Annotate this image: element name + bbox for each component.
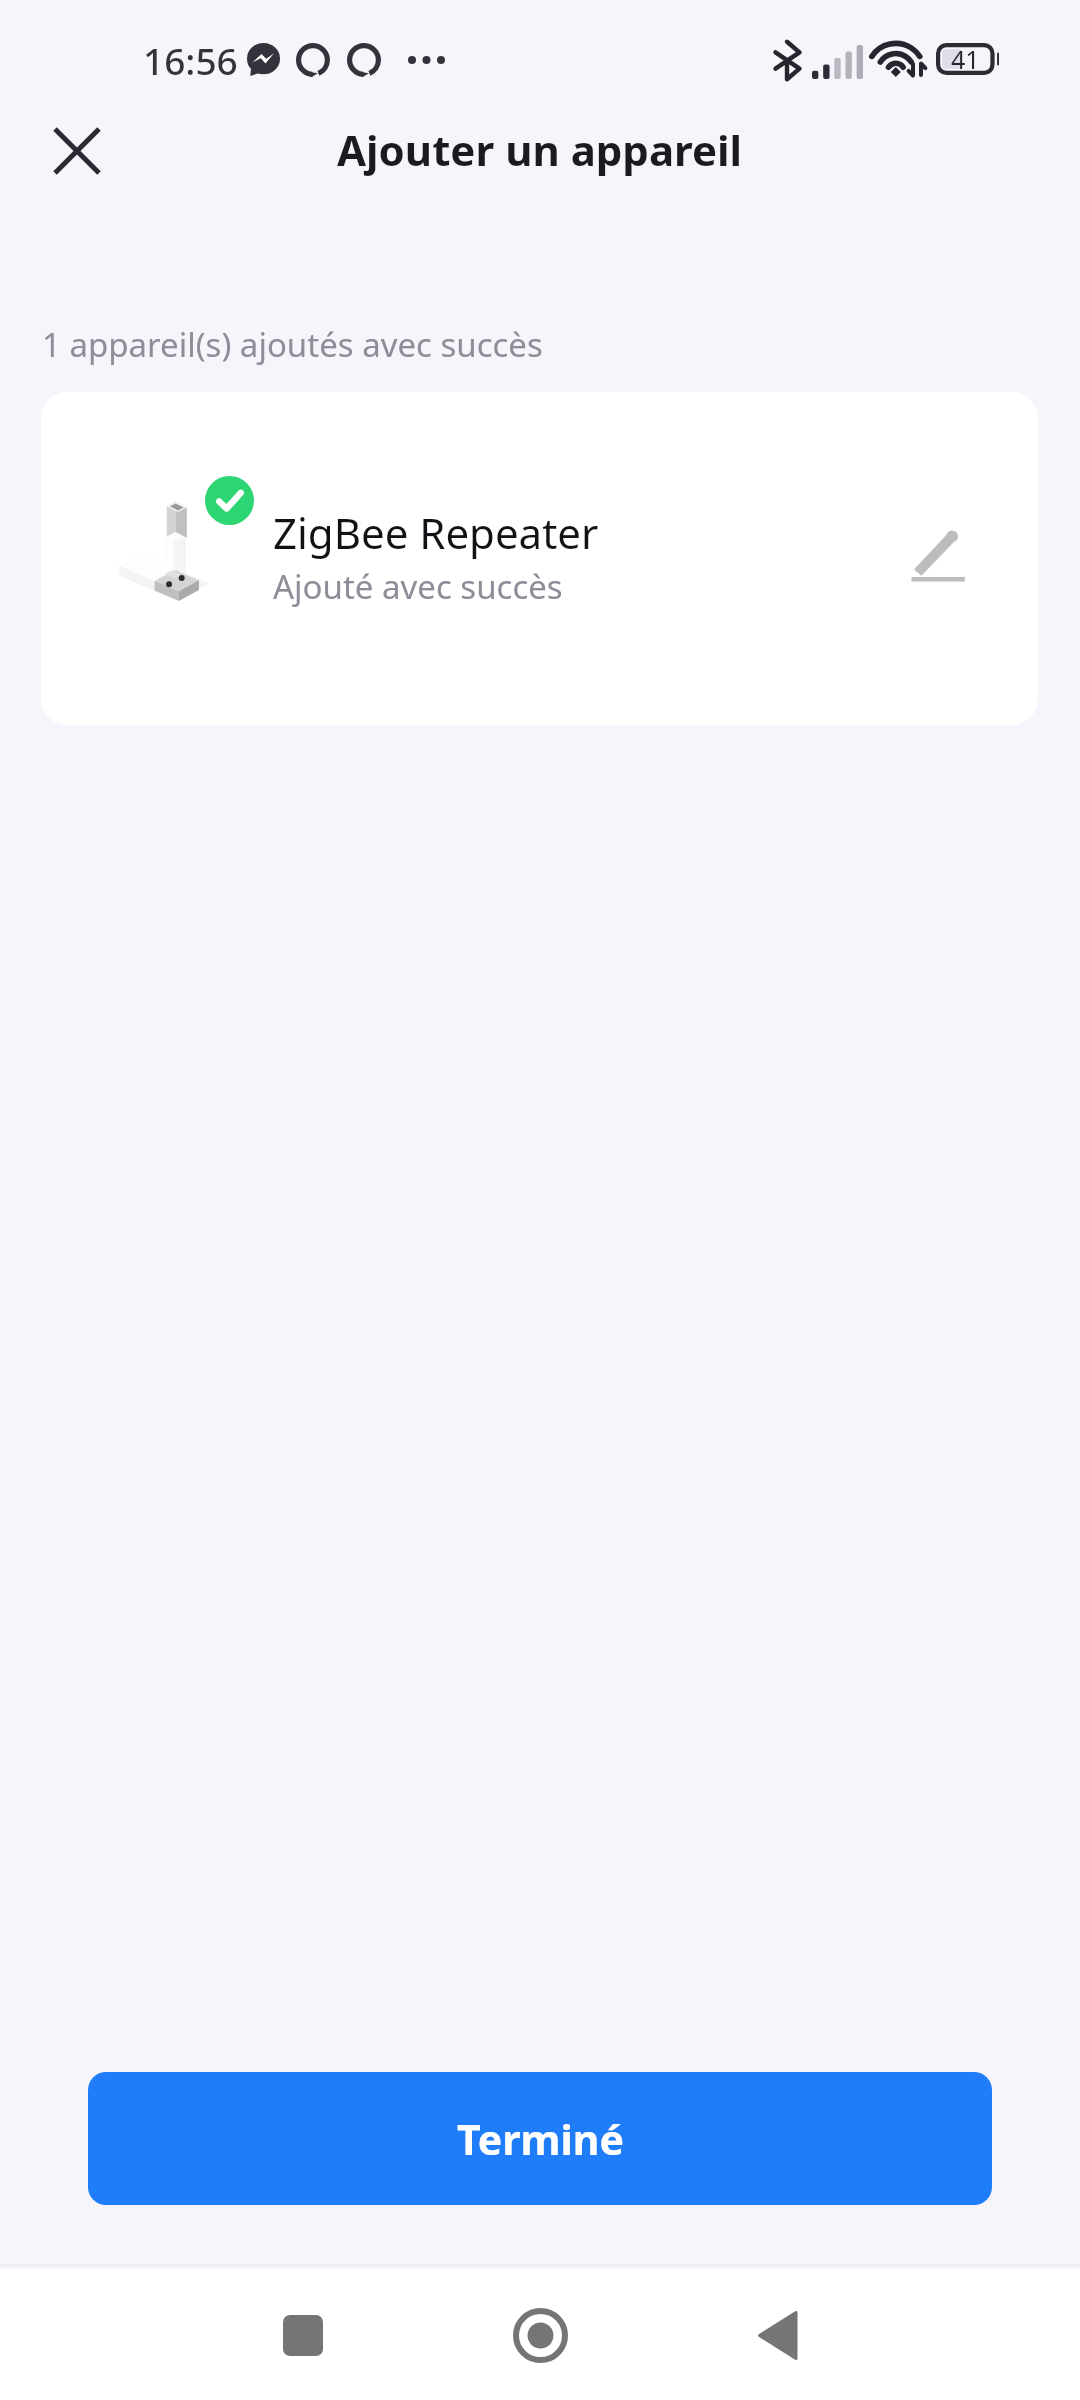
button[interactable]: Edit bbox=[886, 497, 994, 605]
button[interactable]: Back bbox=[732, 2290, 822, 2380]
staticText: 16:56 bbox=[143, 35, 238, 85]
button[interactable]: ZigBee Repeater bbox=[41, 392, 1038, 725]
staticText: 1 appareil(s) ajoutés avec succès bbox=[42, 322, 543, 367]
button[interactable]: Terminé bbox=[88, 2072, 992, 2205]
staticText: Ajouter un appareil bbox=[337, 121, 743, 178]
button[interactable]: Close bbox=[27, 101, 127, 201]
staticText: Ajouté avec succès bbox=[273, 564, 563, 609]
button[interactable]: Home bbox=[495, 2290, 585, 2380]
staticText: Terminé bbox=[457, 2111, 624, 2167]
staticText: 41 bbox=[951, 42, 980, 74]
staticText: ZigBee Repeater bbox=[273, 504, 599, 561]
button[interactable]: Recents bbox=[258, 2290, 348, 2380]
